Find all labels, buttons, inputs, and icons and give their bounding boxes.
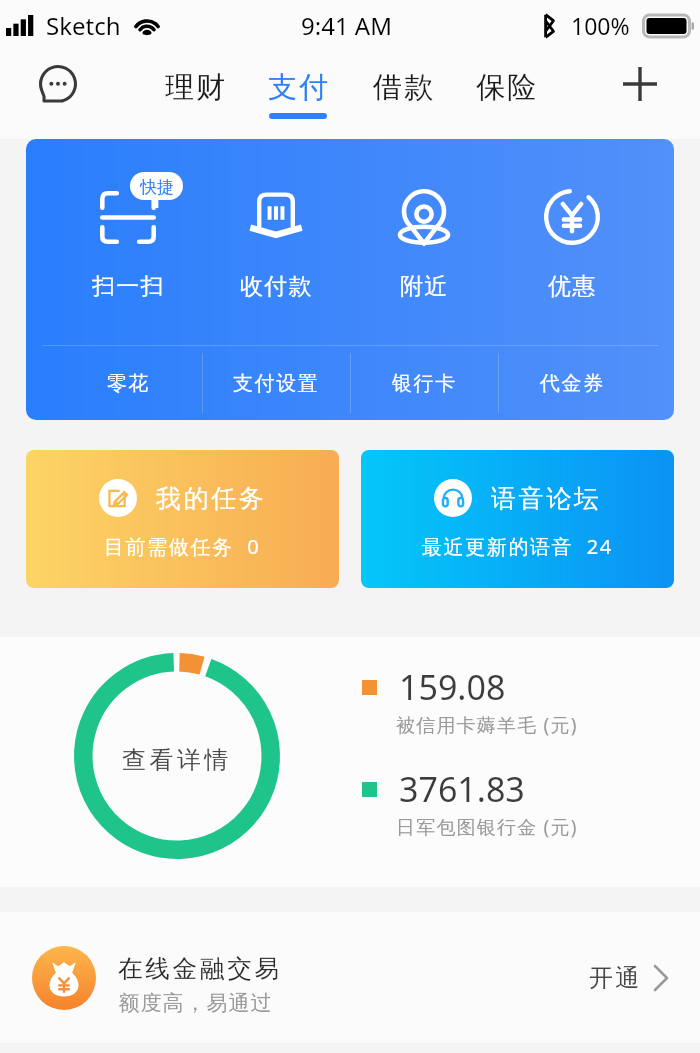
button[interactable]: 在线金融交易 [0, 912, 700, 1043]
button[interactable]: 保险 [474, 69, 538, 120]
button[interactable]: Add [618, 62, 662, 106]
staticText: 最近更新的语音 24 [422, 533, 613, 560]
button[interactable]: 我的任务 [26, 450, 339, 588]
staticText: 附近 [400, 272, 449, 301]
button[interactable]: 支付 [266, 69, 330, 120]
staticText: Sketch [46, 9, 121, 42]
button[interactable]: 收付款 [202, 139, 350, 309]
button[interactable]: 语音论坛 [361, 450, 674, 588]
staticText: 支付设置 [233, 371, 320, 396]
button[interactable]: 优惠 [498, 139, 646, 309]
staticText: 保险 [475, 69, 537, 106]
button[interactable]: Messages [36, 62, 80, 106]
staticText: 零花 [107, 371, 151, 396]
staticText: 查看详情 [122, 745, 232, 775]
staticText: 3761.83 [399, 766, 525, 812]
button[interactable]: 快捷 [54, 139, 202, 309]
button[interactable]: 查看详情 [74, 653, 280, 859]
staticText: 快捷 [140, 177, 174, 198]
button[interactable]: 支付设置 [203, 346, 350, 420]
button[interactable]: 银行卡 [351, 346, 498, 420]
staticText: 159.08 [399, 664, 506, 710]
button[interactable]: 代金券 [499, 346, 646, 420]
staticText: 额度高，易通过 [118, 990, 272, 1016]
button[interactable]: 借款 [371, 69, 435, 120]
staticText: 优惠 [548, 272, 597, 301]
button[interactable]: 附近 [350, 139, 498, 309]
staticText: 理财 [164, 69, 226, 106]
staticText: 语音论坛 [491, 483, 602, 514]
staticText: 开通 [588, 963, 640, 993]
button[interactable]: 零花 [55, 346, 202, 420]
staticText: 100% [571, 10, 630, 41]
staticText: 扫一扫 [92, 272, 165, 301]
staticText: 银行卡 [392, 371, 457, 396]
staticText: 借款 [372, 69, 434, 106]
staticText: 支付 [267, 69, 329, 106]
staticText: 被信用卡薅羊毛 (元) [396, 712, 578, 738]
staticText: 日军包图银行金 (元) [396, 814, 578, 840]
staticText: 代金券 [540, 371, 605, 396]
button[interactable]: 理财 [163, 69, 227, 120]
staticText: 在线金融交易 [118, 953, 282, 984]
staticText: 9:41 AM [301, 9, 392, 42]
staticText: 我的任务 [156, 483, 267, 514]
staticText: 目前需做任务 0 [104, 533, 261, 560]
staticText: 收付款 [240, 272, 313, 301]
